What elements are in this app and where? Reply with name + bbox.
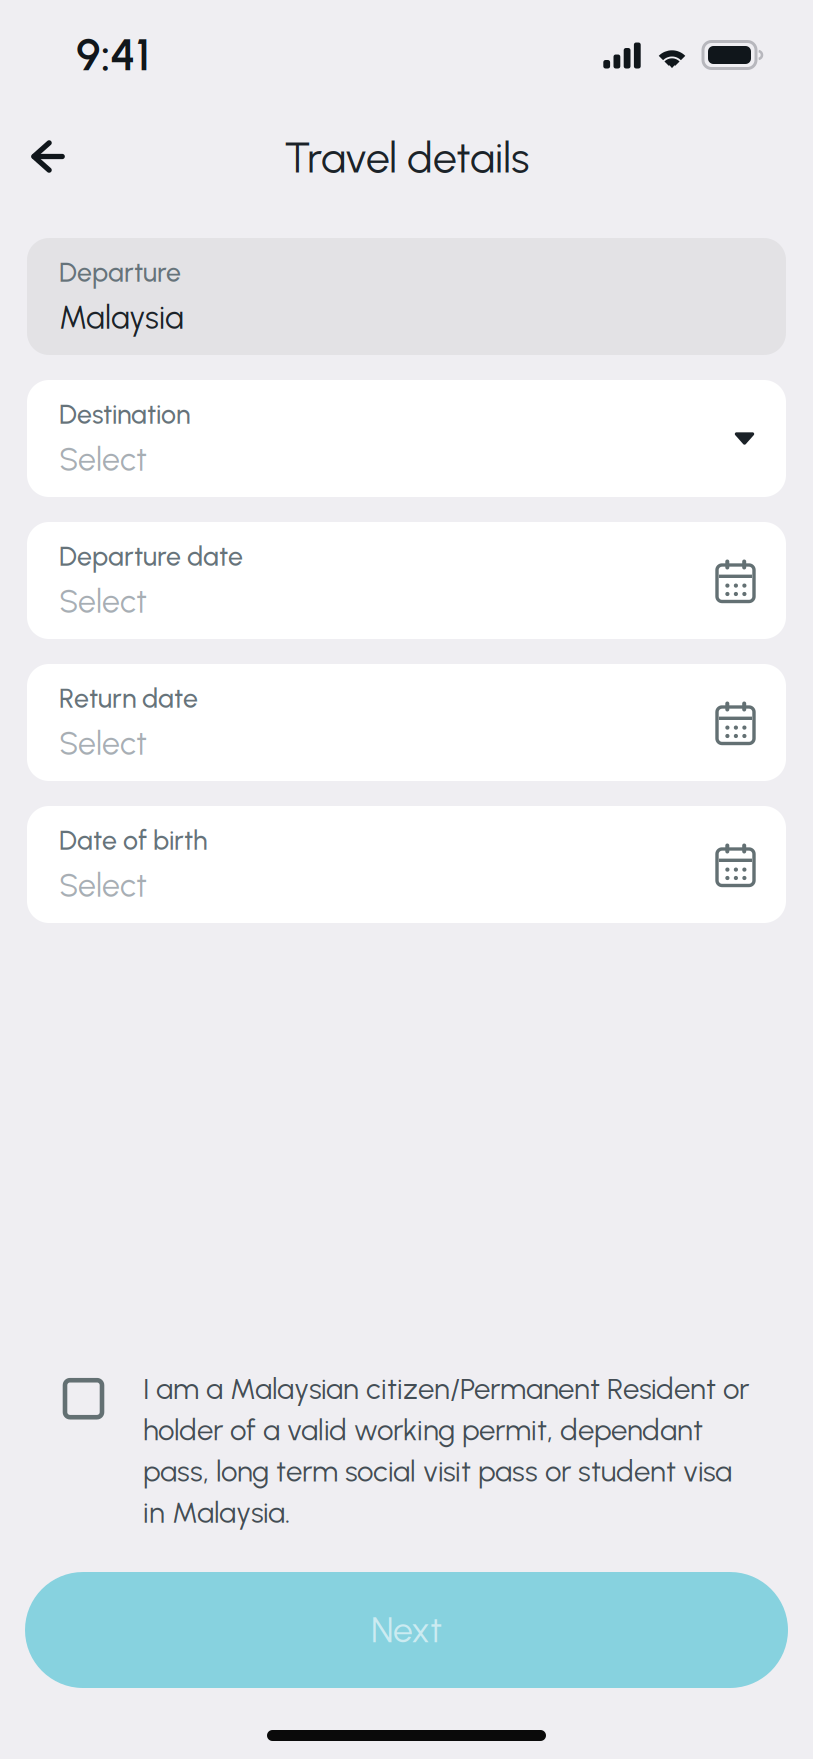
staticText: Next bbox=[371, 1609, 442, 1651]
staticText: Destination bbox=[59, 398, 190, 430]
button[interactable]: Return date bbox=[27, 664, 786, 781]
staticText: Departure date bbox=[59, 540, 243, 572]
button[interactable]: Destination bbox=[27, 380, 786, 497]
button[interactable]: Date of birth bbox=[27, 806, 786, 923]
staticText: Date of birth bbox=[59, 824, 207, 856]
button[interactable]: Back bbox=[17, 125, 79, 187]
staticText: Return date bbox=[59, 682, 198, 714]
staticText: 9:41 bbox=[76, 27, 150, 82]
button[interactable]: Departure bbox=[27, 238, 786, 355]
staticText: Malaysia bbox=[59, 298, 184, 337]
button[interactable]: Departure date bbox=[27, 522, 786, 639]
staticText: Select bbox=[59, 582, 147, 621]
staticText: Select bbox=[59, 724, 147, 763]
staticText: Select bbox=[59, 440, 147, 479]
staticText: Travel details bbox=[284, 132, 529, 183]
button[interactable]: I am a Malaysian citizen/Permanent Resid… bbox=[0, 1371, 813, 1530]
button[interactable]: Next bbox=[25, 1572, 788, 1688]
staticText: I am a Malaysian citizen/Permanent Resid… bbox=[143, 1371, 749, 1530]
staticText: Departure bbox=[59, 256, 181, 288]
staticText: Select bbox=[59, 866, 147, 905]
